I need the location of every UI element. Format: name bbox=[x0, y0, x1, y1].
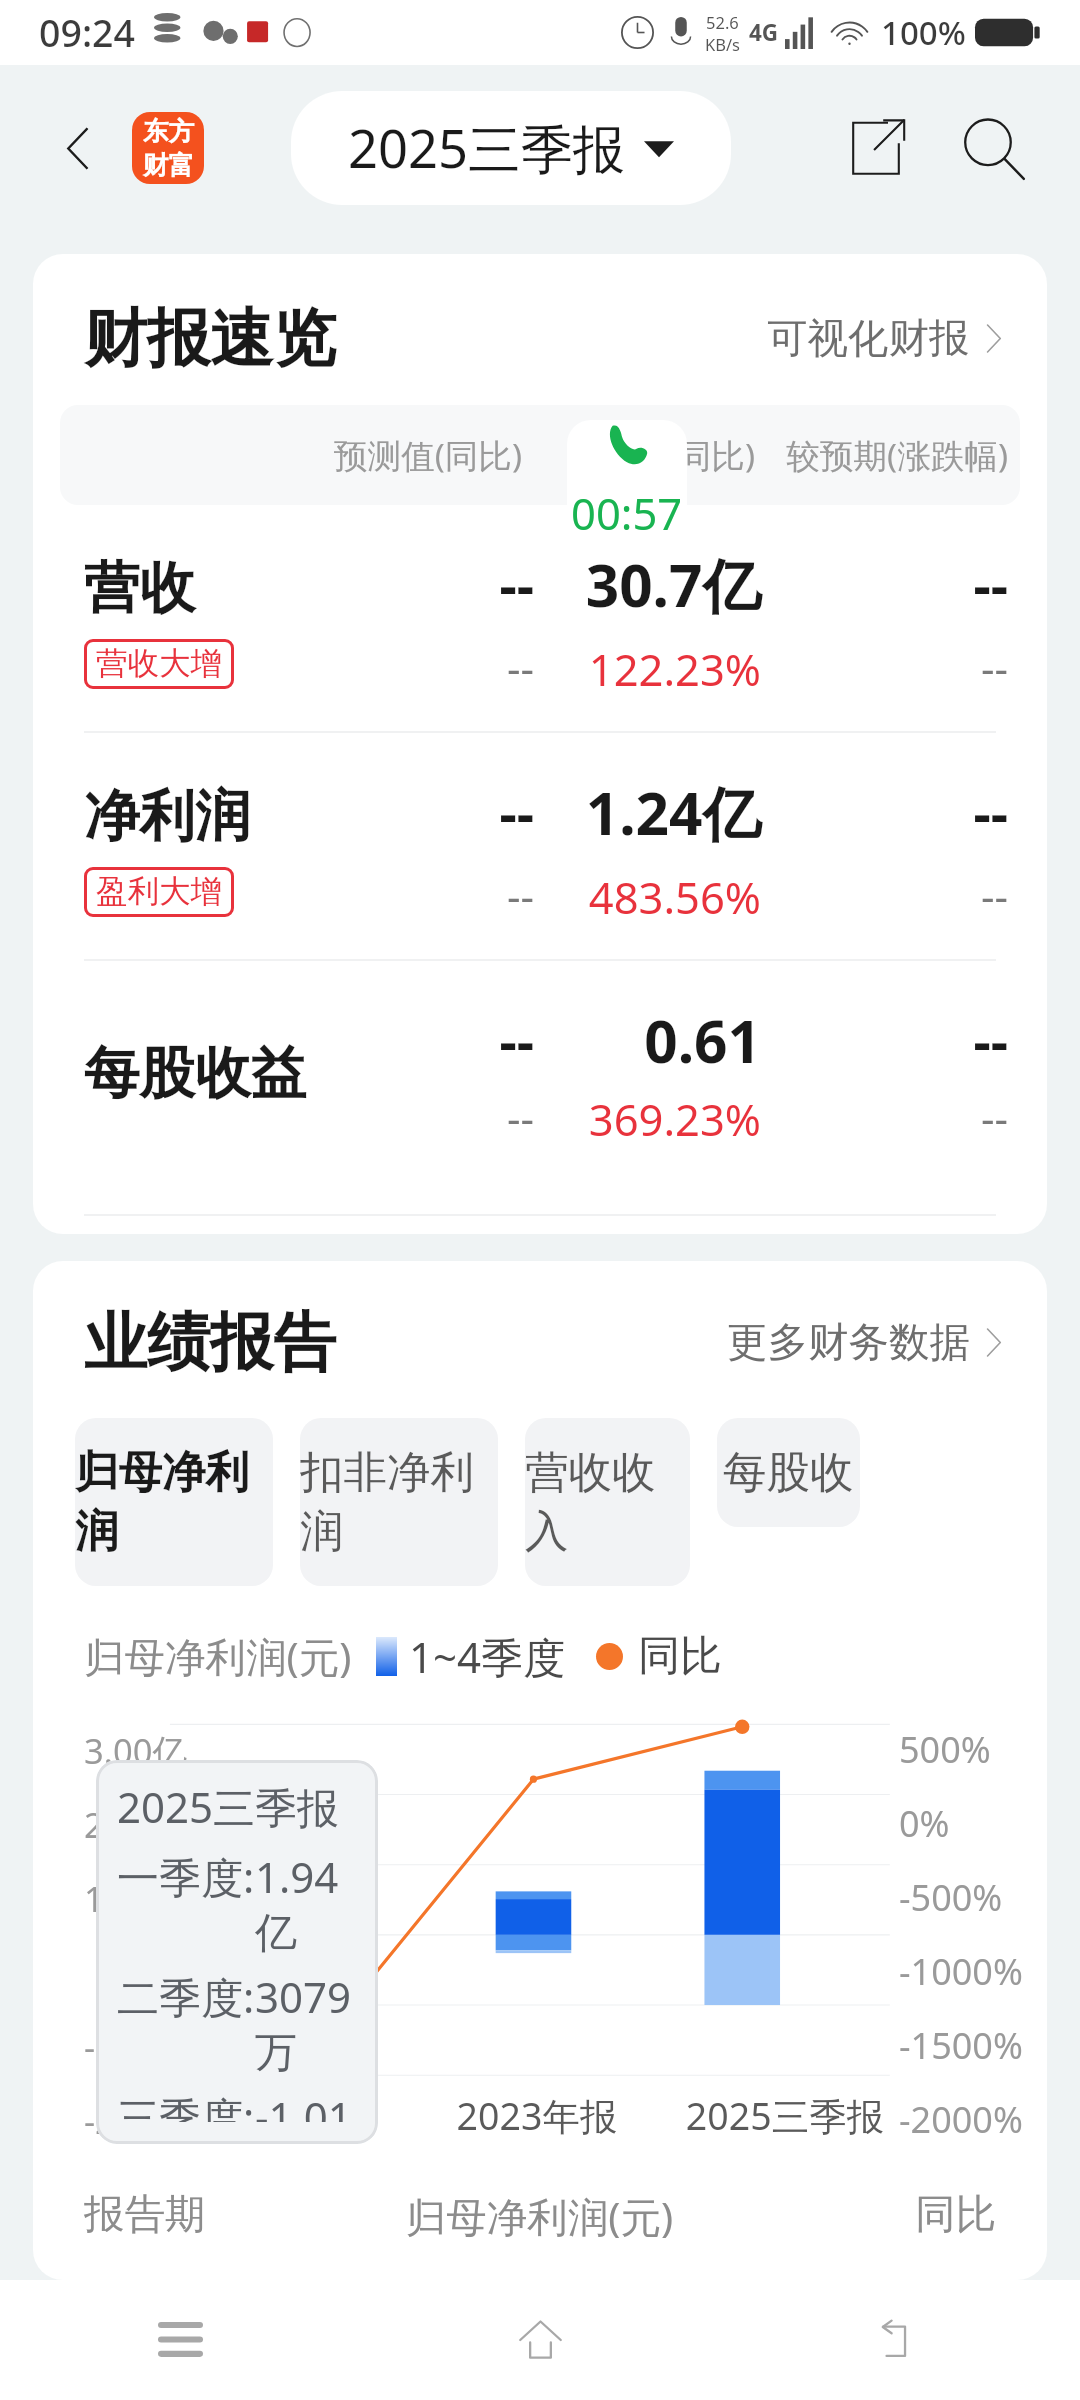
staticText: 三季度: bbox=[117, 2088, 255, 2122]
staticText: -2.00亿 bbox=[84, 2097, 199, 2144]
staticText: 归母净利润(元) bbox=[84, 1629, 352, 1684]
staticText: 更多财务数据 bbox=[727, 1317, 970, 1368]
staticText: 00:57 bbox=[571, 483, 683, 534]
staticText: 每股收益 bbox=[84, 1039, 306, 1109]
staticText: 业绩报告 bbox=[84, 1303, 336, 1382]
staticText: -- bbox=[506, 1089, 534, 1146]
staticText: -1500% bbox=[899, 2021, 1023, 2070]
staticText: 1~4季度 bbox=[409, 1628, 566, 1685]
staticText: -- bbox=[499, 775, 534, 849]
button[interactable]: 扣非净利润 bbox=[300, 1418, 498, 1586]
staticText: 100% bbox=[881, 10, 966, 55]
button[interactable]: Search bbox=[933, 88, 1053, 208]
staticText: 09:24 bbox=[39, 7, 135, 58]
button[interactable]: 东方财富 bbox=[132, 112, 204, 184]
staticText: -- bbox=[980, 867, 1008, 924]
staticText: 2021年报 bbox=[165, 2090, 413, 2141]
staticText: 4G bbox=[749, 17, 779, 48]
button[interactable]: Recent apps bbox=[0, 2280, 360, 2400]
staticText: -1 bbox=[84, 2023, 115, 2070]
staticText: 同比 bbox=[715, 2189, 996, 2240]
staticText: 369.23% bbox=[588, 1089, 761, 1148]
button[interactable]: 更多财务数据 bbox=[727, 1317, 1002, 1368]
staticText: -- bbox=[973, 775, 1008, 849]
staticText: 一季度: bbox=[117, 1848, 255, 1905]
staticText: 同比 bbox=[638, 1630, 722, 1683]
staticText: -500% bbox=[899, 1873, 1003, 1922]
staticText: 营收收入 bbox=[525, 1445, 690, 1559]
staticText: -2000% bbox=[899, 2095, 1023, 2144]
button[interactable]: Back bbox=[27, 97, 129, 199]
staticText: 较预期(涨跌幅) bbox=[764, 432, 1008, 478]
staticText: 1.24亿 bbox=[585, 772, 761, 852]
button[interactable]: Ongoing call 00:57 bbox=[567, 420, 687, 534]
button[interactable]: 每股收 bbox=[717, 1418, 860, 1527]
staticText: 财富 bbox=[143, 149, 194, 181]
staticText: 可视化财报 bbox=[767, 313, 970, 364]
staticText: 2025三季报 bbox=[661, 2090, 909, 2141]
staticText: 净利润 bbox=[84, 782, 251, 852]
staticText: 483.56% bbox=[588, 867, 761, 926]
staticText: -- bbox=[980, 639, 1008, 696]
staticText: -- bbox=[499, 547, 534, 621]
button[interactable]: Share bbox=[819, 91, 933, 205]
staticText: 预测值(同比) bbox=[304, 432, 522, 478]
staticText: 公布值(同比) bbox=[537, 432, 755, 478]
staticText: 3079万 bbox=[255, 1968, 357, 2080]
button[interactable]: Home bbox=[360, 2280, 720, 2400]
staticText: 52.6 bbox=[706, 11, 739, 33]
staticText: -1000% bbox=[899, 1947, 1023, 1996]
staticText: -- bbox=[973, 1003, 1008, 1077]
staticText: 东方 bbox=[143, 115, 194, 147]
staticText: 30.7亿 bbox=[585, 544, 761, 624]
staticText: 归母净利润(元) bbox=[364, 2189, 715, 2244]
staticText: 2025三季报 bbox=[117, 1778, 340, 1835]
staticText: KB/s bbox=[705, 33, 740, 55]
staticText: 报告期 bbox=[84, 2189, 364, 2240]
button[interactable]: Back bbox=[720, 2280, 1080, 2400]
staticText: 500% bbox=[899, 1725, 991, 1774]
staticText: 财报速览 bbox=[84, 299, 336, 378]
staticText: -- bbox=[980, 1089, 1008, 1146]
staticText: 2 bbox=[84, 1801, 104, 1848]
staticText: 归母净利润 bbox=[75, 1445, 273, 1559]
staticText: -- bbox=[499, 1003, 534, 1077]
staticText: 营收 bbox=[84, 554, 195, 624]
staticText: 每股收 bbox=[723, 1445, 854, 1500]
staticText: 0.61 bbox=[644, 1000, 761, 1080]
button[interactable]: 2025三季报 bbox=[291, 91, 731, 205]
staticText: 122.23% bbox=[588, 639, 761, 698]
staticText: 0% bbox=[899, 1799, 950, 1848]
staticText: 1.94亿 bbox=[255, 1848, 357, 1960]
staticText: -1.01亿 bbox=[255, 2088, 357, 2122]
staticText: 2023年报 bbox=[413, 2090, 661, 2141]
staticText: -- bbox=[506, 867, 534, 924]
staticText: 1 bbox=[84, 1875, 104, 1922]
staticText: 盈利大增 bbox=[96, 872, 222, 912]
staticText: -- bbox=[973, 547, 1008, 621]
staticText: 3.00亿 bbox=[84, 1727, 187, 1774]
button[interactable]: 归母净利润 bbox=[75, 1418, 273, 1586]
button[interactable]: 可视化财报 bbox=[767, 313, 1002, 364]
staticText: -- bbox=[506, 639, 534, 696]
staticText: 2025三季报 bbox=[348, 112, 626, 184]
staticText: 扣非净利润 bbox=[300, 1445, 498, 1559]
staticText: 营收大增 bbox=[96, 644, 222, 684]
staticText: 二季度: bbox=[117, 1968, 255, 2025]
button[interactable]: 营收收入 bbox=[525, 1418, 690, 1586]
